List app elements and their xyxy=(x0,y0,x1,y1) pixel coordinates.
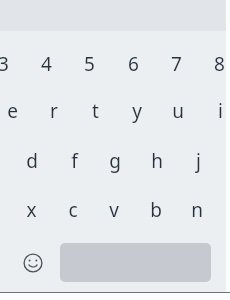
button[interactable]: h xyxy=(140,141,174,181)
staticText: d xyxy=(26,148,38,174)
staticText: e xyxy=(7,98,18,124)
button[interactable]: g xyxy=(98,141,132,181)
staticText: 4 xyxy=(41,51,52,77)
staticText: 6 xyxy=(128,51,139,77)
staticText: n xyxy=(191,197,203,223)
staticText: x xyxy=(26,197,37,223)
staticText: h xyxy=(151,148,163,174)
button[interactable]: u xyxy=(161,91,195,131)
staticText: j xyxy=(196,148,201,174)
button[interactable]: 8 xyxy=(202,44,230,84)
button[interactable]: 5 xyxy=(72,44,106,84)
button[interactable]: e xyxy=(0,91,29,131)
staticText: i xyxy=(218,98,223,124)
staticText: u xyxy=(172,98,184,124)
staticText: y xyxy=(132,98,142,124)
button[interactable]: v xyxy=(97,190,131,230)
button[interactable]: 4 xyxy=(29,44,63,84)
staticText: 3 xyxy=(0,51,9,77)
button[interactable]: t xyxy=(78,91,112,131)
button[interactable]: d xyxy=(15,141,49,181)
button[interactable]: 3 xyxy=(0,44,20,84)
button[interactable]: n xyxy=(180,190,214,230)
staticText: t xyxy=(92,98,99,124)
button[interactable]: 6 xyxy=(116,44,150,84)
staticText: f xyxy=(71,148,78,174)
staticText: 7 xyxy=(171,51,182,77)
staticText: c xyxy=(68,197,78,223)
staticText: b xyxy=(150,197,162,223)
staticText: v xyxy=(109,197,119,223)
button[interactable]: c xyxy=(56,190,90,230)
button[interactable]: f xyxy=(57,141,91,181)
staticText: 8 xyxy=(214,51,225,77)
button[interactable]: y xyxy=(120,91,154,131)
button[interactable]: r xyxy=(37,91,71,131)
button[interactable]: b xyxy=(139,190,173,230)
staticText: 5 xyxy=(84,51,95,77)
button[interactable]: 7 xyxy=(159,44,193,84)
button[interactable]: i xyxy=(203,91,230,131)
button[interactable]: x xyxy=(14,190,48,230)
staticText: g xyxy=(109,148,121,174)
button[interactable]: Emoji keyboard xyxy=(16,244,50,282)
staticText: r xyxy=(50,98,58,124)
button[interactable]: j xyxy=(181,141,215,181)
